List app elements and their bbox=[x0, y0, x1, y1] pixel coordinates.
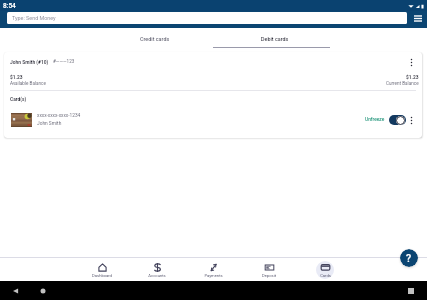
staticText: Accounts bbox=[148, 273, 166, 278]
button[interactable]: Account options bbox=[406, 57, 416, 68]
staticText: ? bbox=[406, 252, 412, 264]
staticText: Cards bbox=[320, 273, 331, 278]
button[interactable]: Help bbox=[400, 249, 418, 267]
button[interactable]: Credit cards bbox=[96, 28, 213, 49]
staticText: Dashboard bbox=[92, 273, 112, 278]
staticText: Payments bbox=[204, 273, 223, 278]
button[interactable]: Cards bbox=[297, 257, 353, 281]
button[interactable]: Debit cards bbox=[213, 28, 330, 49]
staticText: Credit cards bbox=[140, 36, 170, 42]
staticText: Deposit bbox=[262, 273, 276, 278]
other: Home bbox=[40, 288, 46, 294]
staticText: Available Balance bbox=[10, 81, 46, 86]
button[interactable]: xxxx-xxxx-xxxx-1234 bbox=[11, 113, 417, 127]
staticText: Unfreeze bbox=[365, 117, 385, 123]
button[interactable]: Card options bbox=[406, 115, 416, 126]
staticText: Current Balance bbox=[386, 81, 419, 86]
staticText: $1.23 bbox=[406, 74, 419, 80]
staticText: $1.23 bbox=[10, 74, 23, 80]
staticText: #———123 bbox=[53, 59, 75, 64]
button[interactable]: Type: Send Money bbox=[7, 12, 407, 24]
button[interactable]: Accounts bbox=[129, 257, 185, 281]
button[interactable]: Menu bbox=[411, 12, 424, 25]
staticText: Type: Send Money bbox=[12, 15, 56, 21]
staticText: Card(s) bbox=[10, 96, 27, 102]
staticText: John Smith bbox=[37, 121, 62, 127]
other: Back bbox=[13, 288, 19, 294]
staticText: John Smith (#10) bbox=[10, 59, 49, 65]
button[interactable]: Deposit bbox=[241, 257, 297, 281]
staticText: Debit cards bbox=[261, 36, 289, 42]
staticText: xxxx-xxxx-xxxx-1234 bbox=[37, 113, 81, 119]
staticText: 8:54 bbox=[3, 2, 16, 10]
button[interactable]: Payments bbox=[185, 257, 241, 281]
button[interactable]: Dashboard bbox=[74, 257, 129, 281]
button[interactable]: Freeze card bbox=[389, 115, 406, 125]
